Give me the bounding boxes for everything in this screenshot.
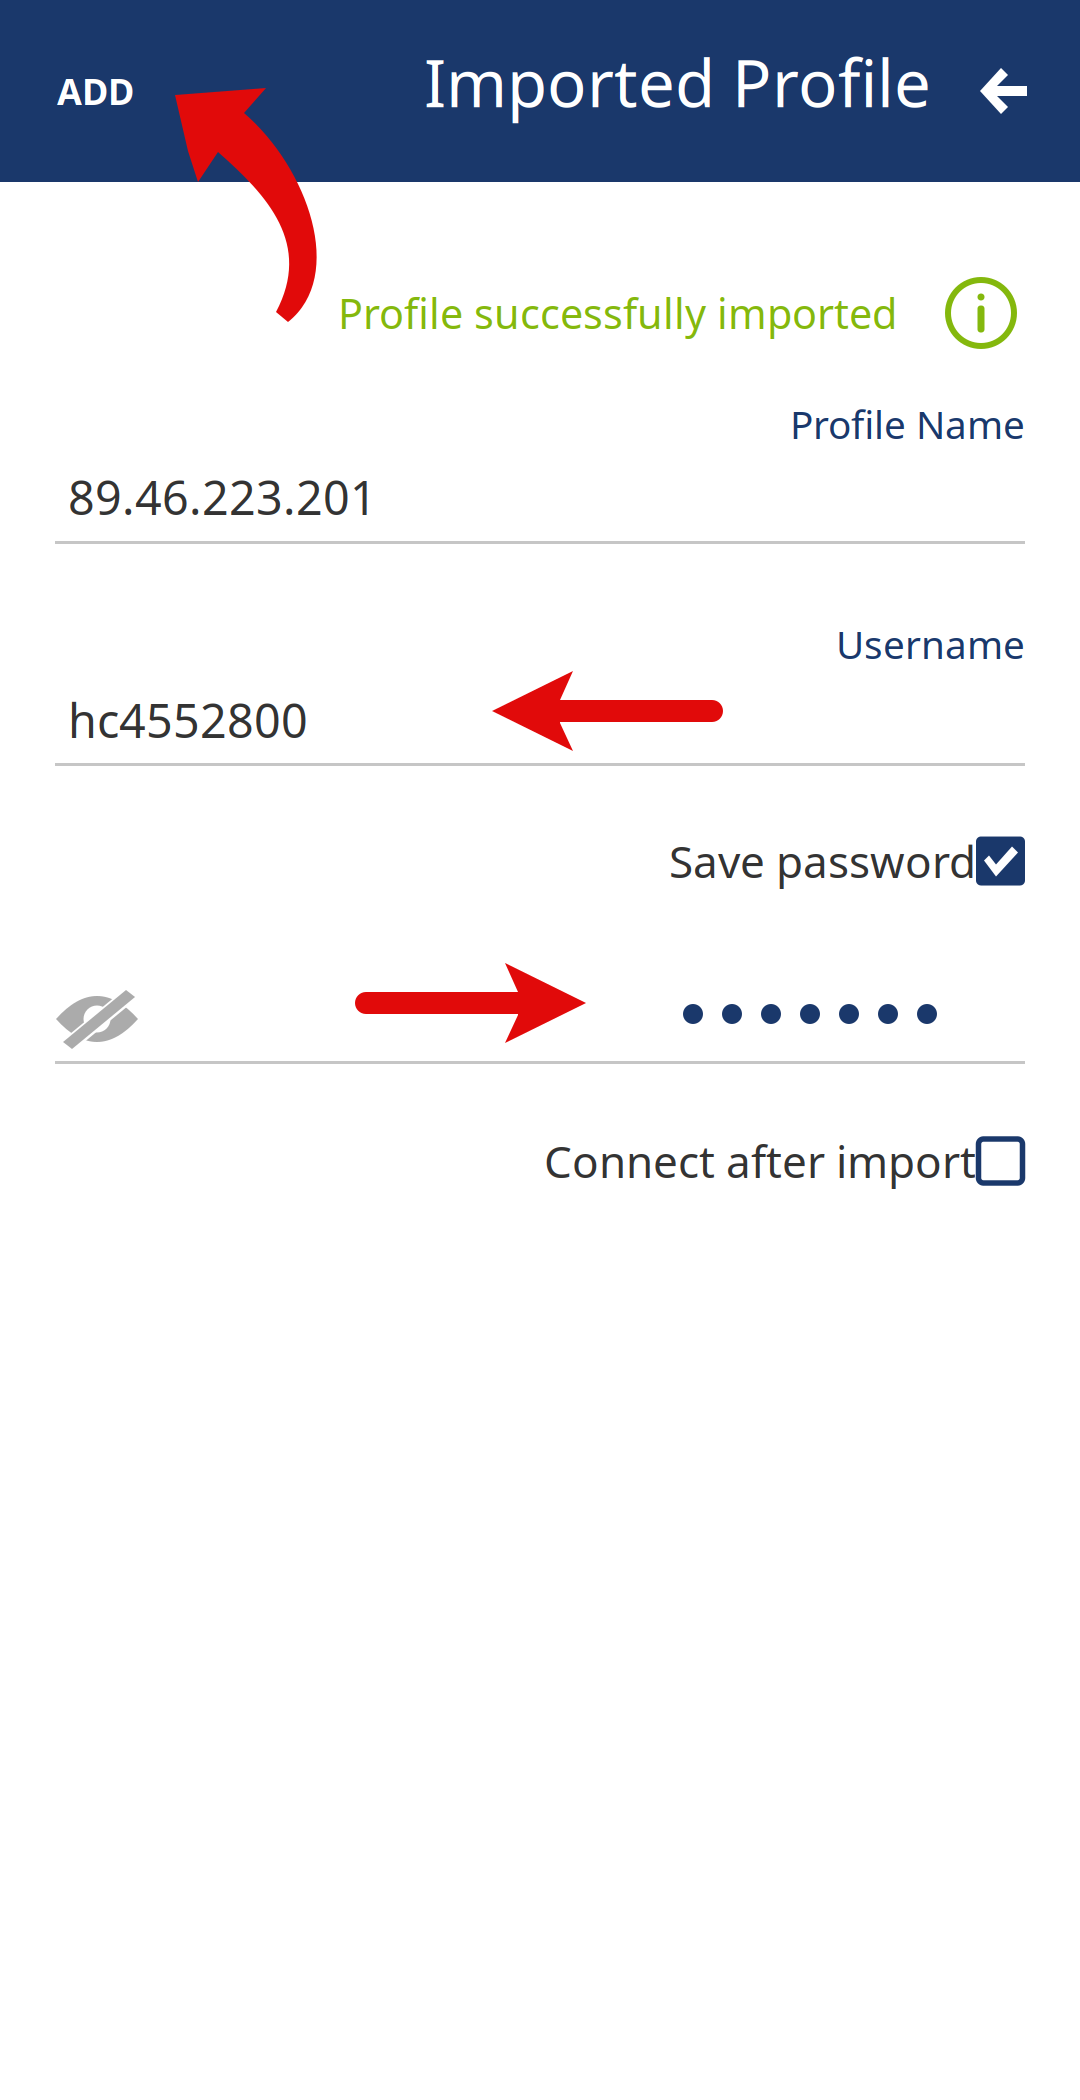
button[interactable]: Connect after import [55, 1133, 1025, 1189]
staticText: Imported Profile [424, 39, 931, 125]
staticText: Connect after import [544, 1132, 976, 1190]
staticText: Profile Name [790, 398, 1025, 450]
staticText: hc4552800 [68, 689, 308, 751]
button[interactable]: Back [979, 67, 1028, 115]
staticText: Username [836, 618, 1025, 670]
button[interactable]: Show password [55, 989, 139, 1049]
button[interactable]: Save password [55, 833, 1025, 889]
button[interactable]: ADD [41, 51, 150, 131]
staticText: ADD [57, 67, 134, 115]
staticText: Save password [669, 832, 976, 890]
button[interactable]: Information [945, 277, 1017, 349]
staticText: 89.46.223.201 [68, 466, 377, 528]
staticText: Profile successfully imported [338, 286, 897, 340]
